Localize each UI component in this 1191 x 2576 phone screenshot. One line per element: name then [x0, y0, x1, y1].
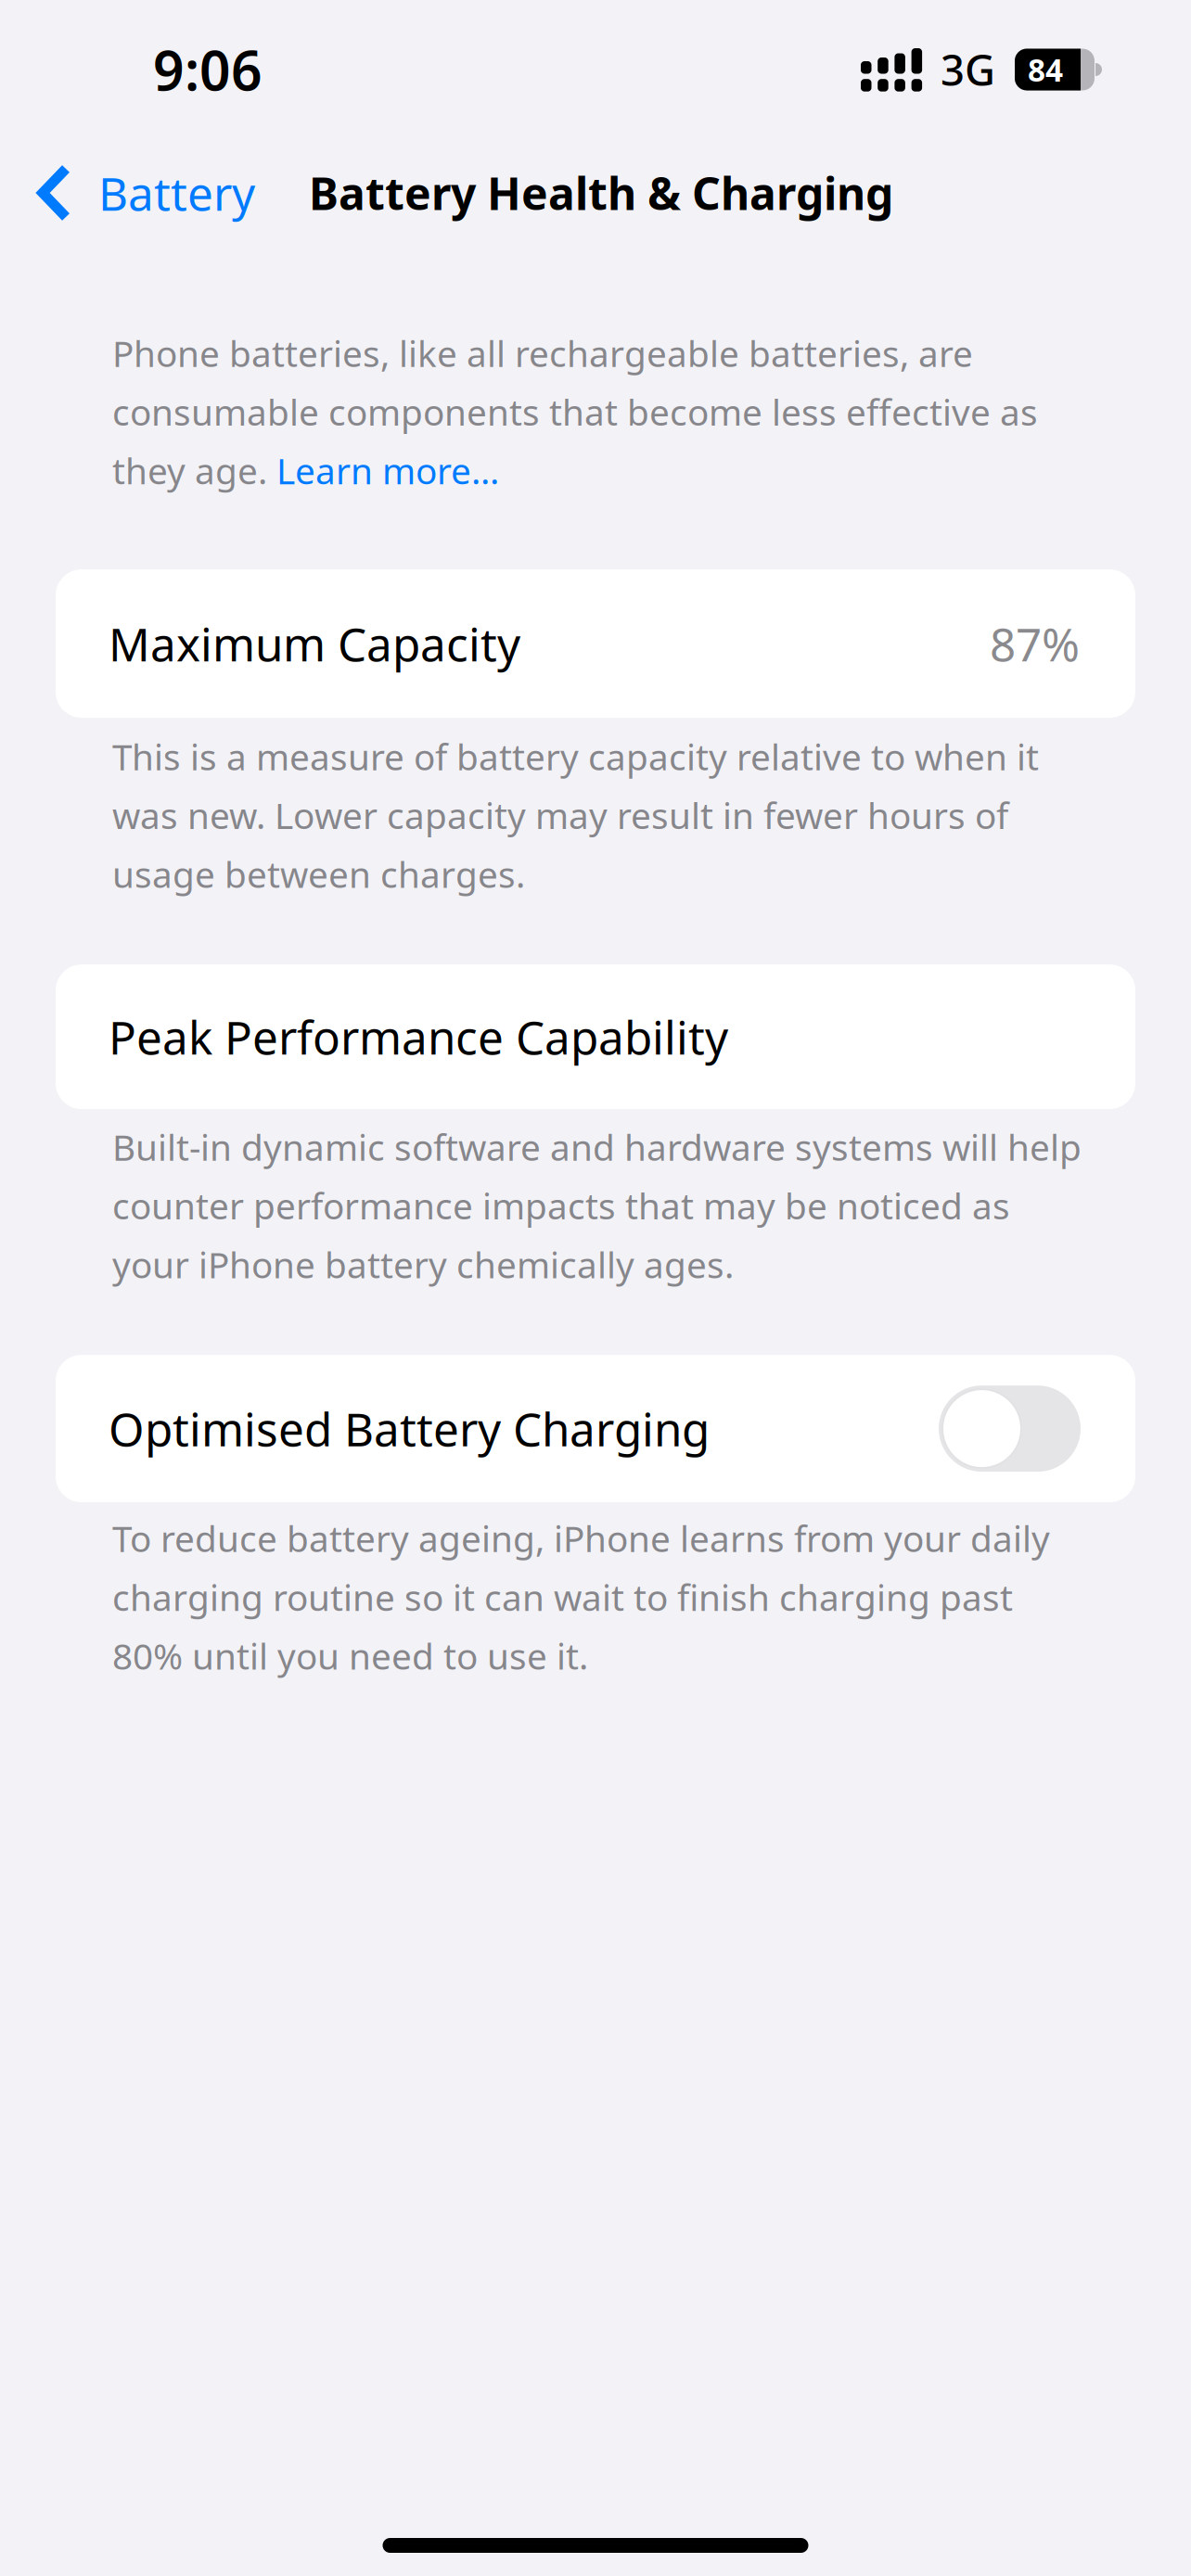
staticText: consumable components that become less e…	[112, 388, 1038, 435]
staticText: Learn more...	[276, 447, 499, 494]
staticText: Battery Health & Charging	[309, 163, 893, 222]
staticText: Phone batteries, like all rechargeable b…	[112, 329, 973, 377]
staticText: Built-in dynamic software and hardware s…	[112, 1123, 1082, 1288]
button[interactable]: Peak Performance Capability	[0, 964, 1191, 1109]
button[interactable]: Optimised Battery Charging	[0, 1355, 1191, 1502]
staticText: 87%	[990, 613, 1080, 674]
staticText: To reduce battery ageing, iPhone learns …	[112, 1514, 1050, 1679]
staticText: Peak Performance Capability	[109, 1006, 728, 1067]
staticText: Optimised Battery Charging	[109, 1398, 710, 1459]
button[interactable]: Maximum Capacity	[0, 569, 1191, 718]
button[interactable]: Learn more...	[276, 447, 499, 494]
staticText: This is a measure of battery capacity re…	[112, 733, 1039, 898]
staticText: Maximum Capacity	[109, 613, 520, 674]
staticText: 9:06	[153, 33, 263, 106]
staticText: they age.	[112, 447, 276, 494]
staticText: 3G	[941, 42, 995, 97]
staticText: 84	[1028, 49, 1063, 90]
staticText: Battery	[98, 162, 255, 223]
button[interactable]: Battery	[0, 139, 268, 247]
